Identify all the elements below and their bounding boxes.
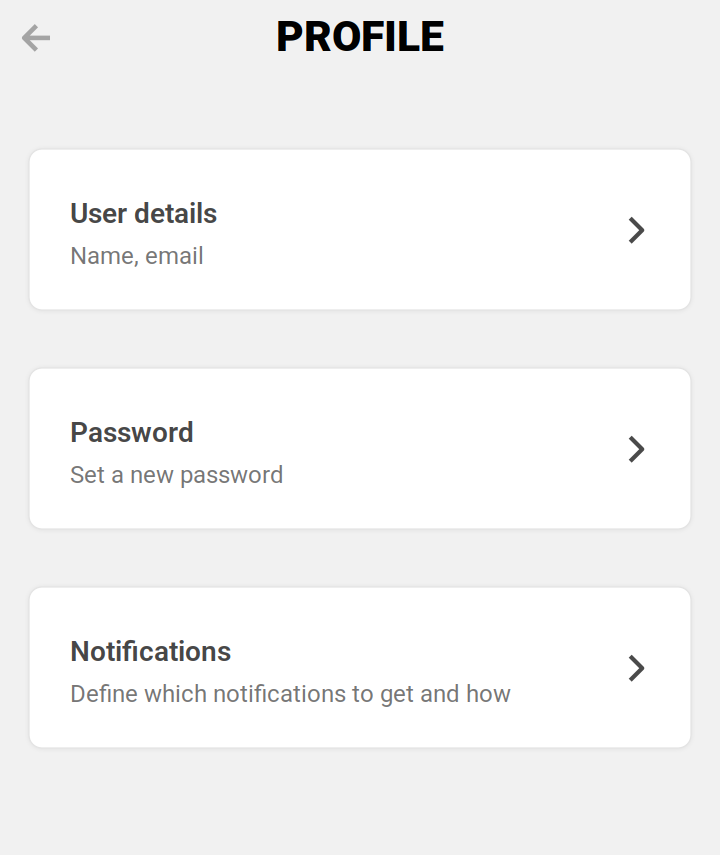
staticText: Name, email: [70, 242, 204, 270]
button[interactable]: Password: [29, 368, 691, 529]
button[interactable]: Back: [0, 6, 66, 67]
staticText: Set a new password: [70, 461, 284, 489]
staticText: Password: [70, 416, 194, 449]
staticText: User details: [70, 197, 217, 230]
staticText: PROFILE: [276, 11, 444, 61]
staticText: Define which notifications to get and ho…: [70, 680, 511, 708]
button[interactable]: Notifications: [29, 587, 691, 748]
staticText: Notifications: [70, 635, 231, 668]
button[interactable]: User details: [29, 149, 691, 310]
